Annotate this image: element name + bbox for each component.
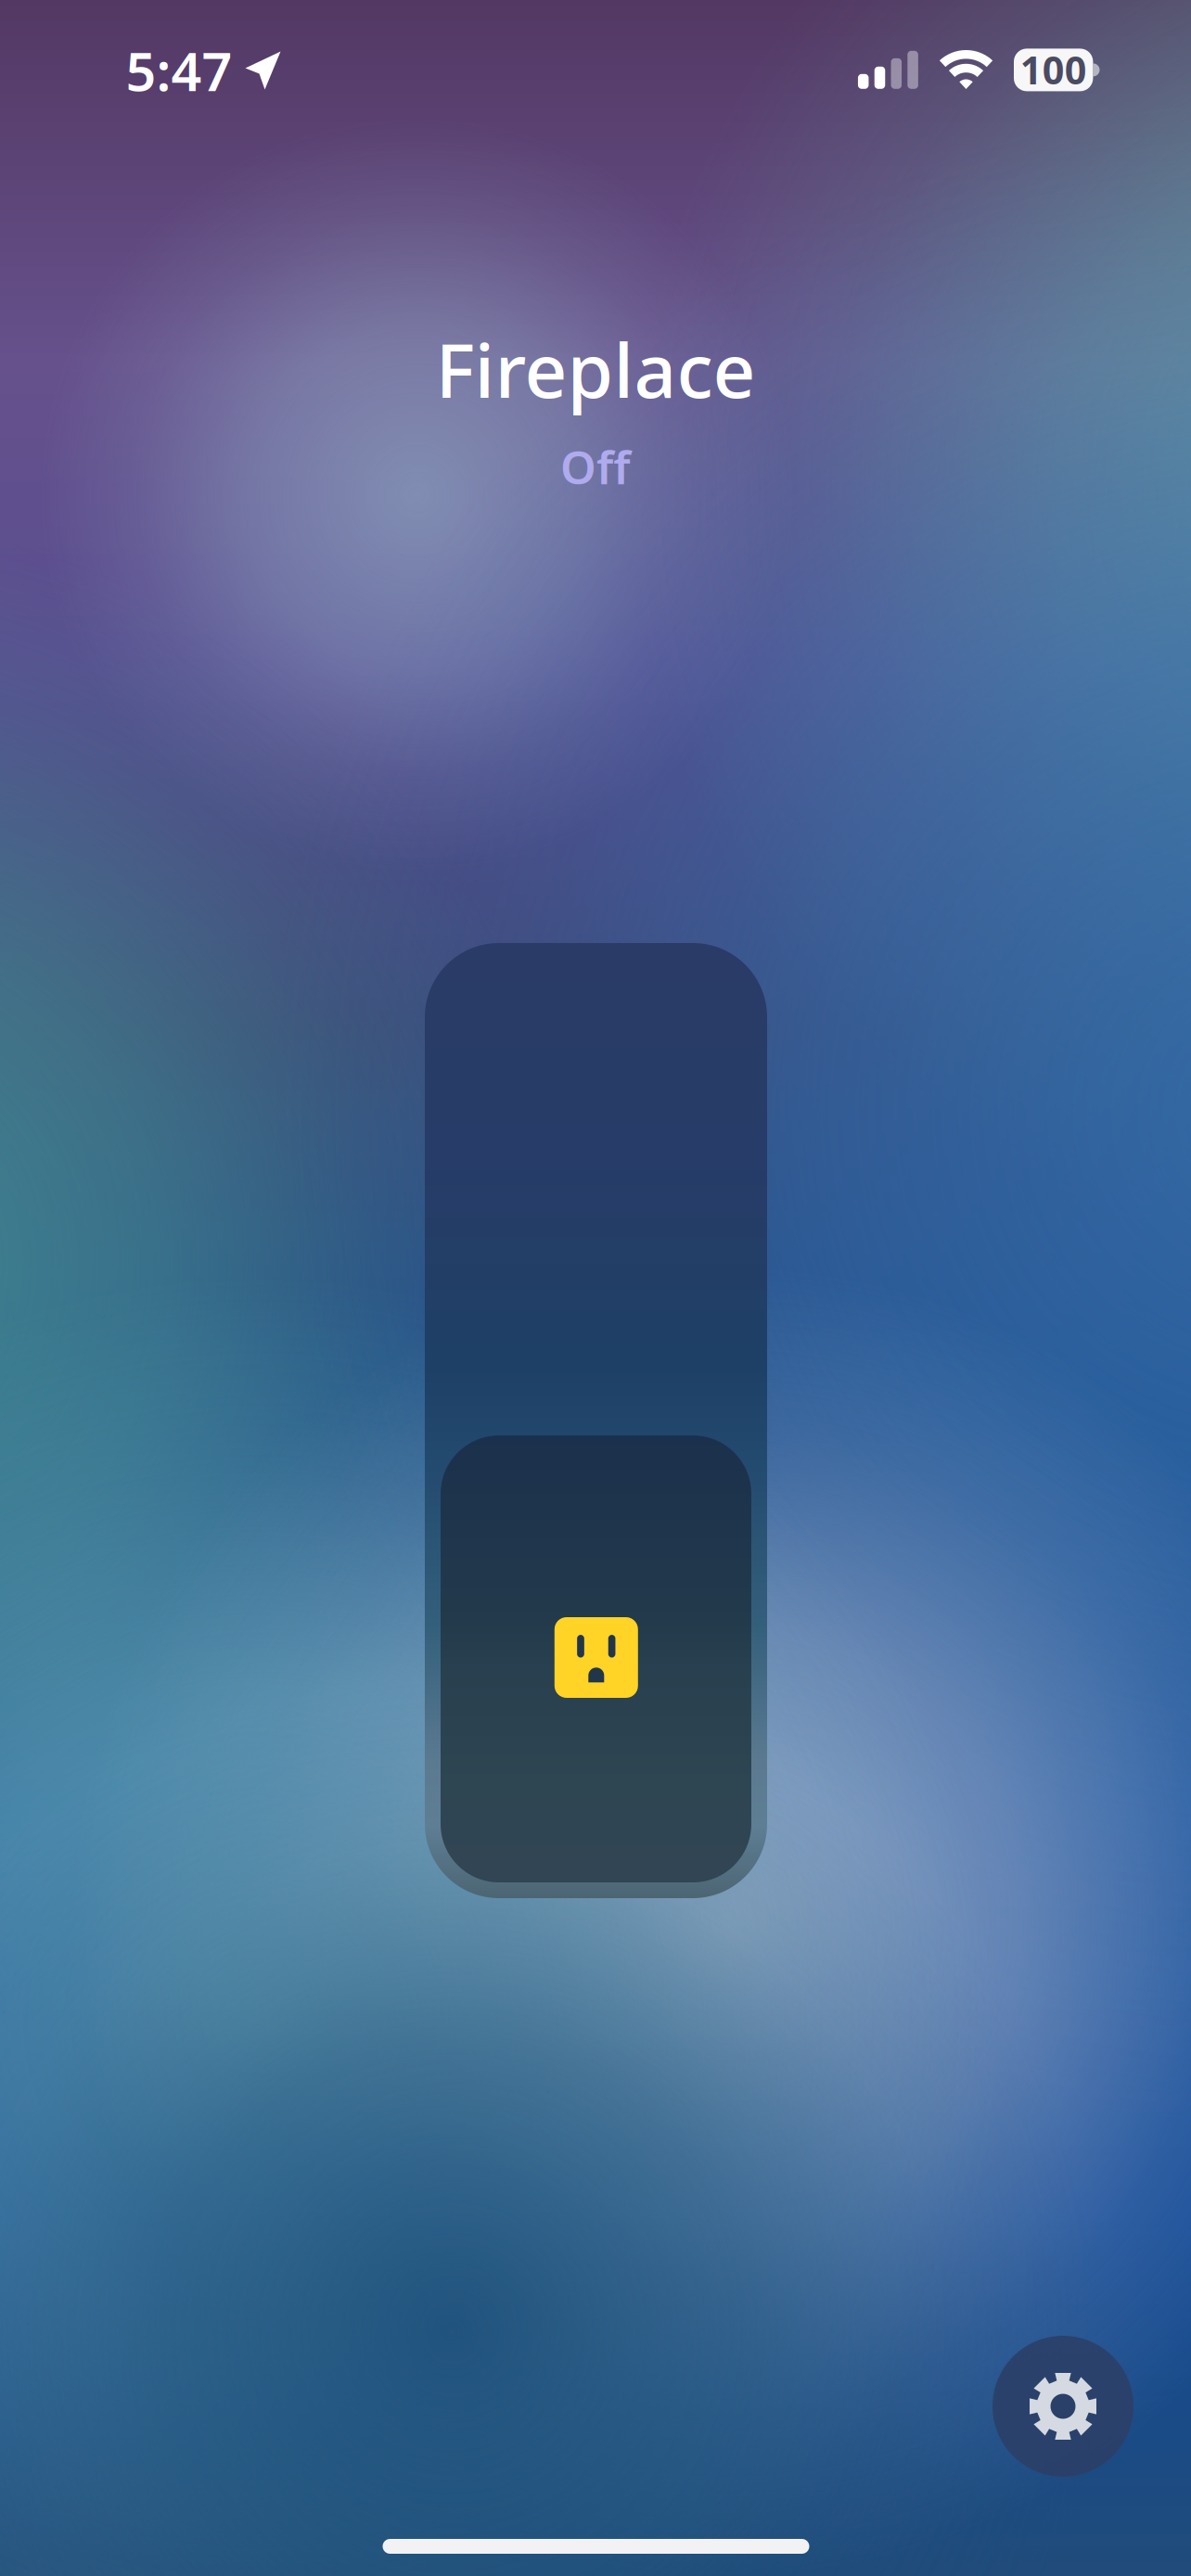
staticText: 100 [1020,44,1087,95]
staticText: Fireplace [435,320,756,418]
button[interactable]: Settings [992,2336,1133,2477]
staticText: Off [560,436,631,497]
staticText: 5:47 [126,35,232,106]
button[interactable] [425,943,767,1898]
